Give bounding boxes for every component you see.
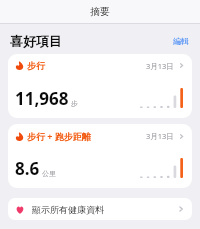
other: Details (178, 62, 185, 69)
staticText: 步行 + 跑步距離 (27, 130, 91, 142)
other: Health (16, 206, 24, 214)
staticText: 步行 (27, 60, 45, 71)
staticText: 步 (71, 99, 78, 108)
staticText: 摘要 (90, 5, 110, 18)
staticText: 編輯 (173, 36, 189, 46)
other: Open (177, 205, 185, 213)
staticText: 公里 (42, 169, 56, 178)
staticText: 8.6 (15, 157, 40, 180)
other: Details (178, 133, 185, 140)
button[interactable]: Health (8, 198, 192, 220)
button[interactable]: Activity (8, 54, 192, 118)
other: Activity (15, 132, 24, 141)
other: Activity (15, 61, 24, 70)
button[interactable]: Activity (8, 124, 192, 188)
staticText: 顯示所有健康資料 (32, 204, 104, 215)
staticText: 11,968 (15, 87, 69, 110)
staticText: 喜好項目 (10, 33, 62, 49)
button[interactable]: 編輯 (170, 33, 192, 49)
staticText: 3月13日 (146, 61, 174, 71)
staticText: 3月13日 (146, 131, 174, 141)
